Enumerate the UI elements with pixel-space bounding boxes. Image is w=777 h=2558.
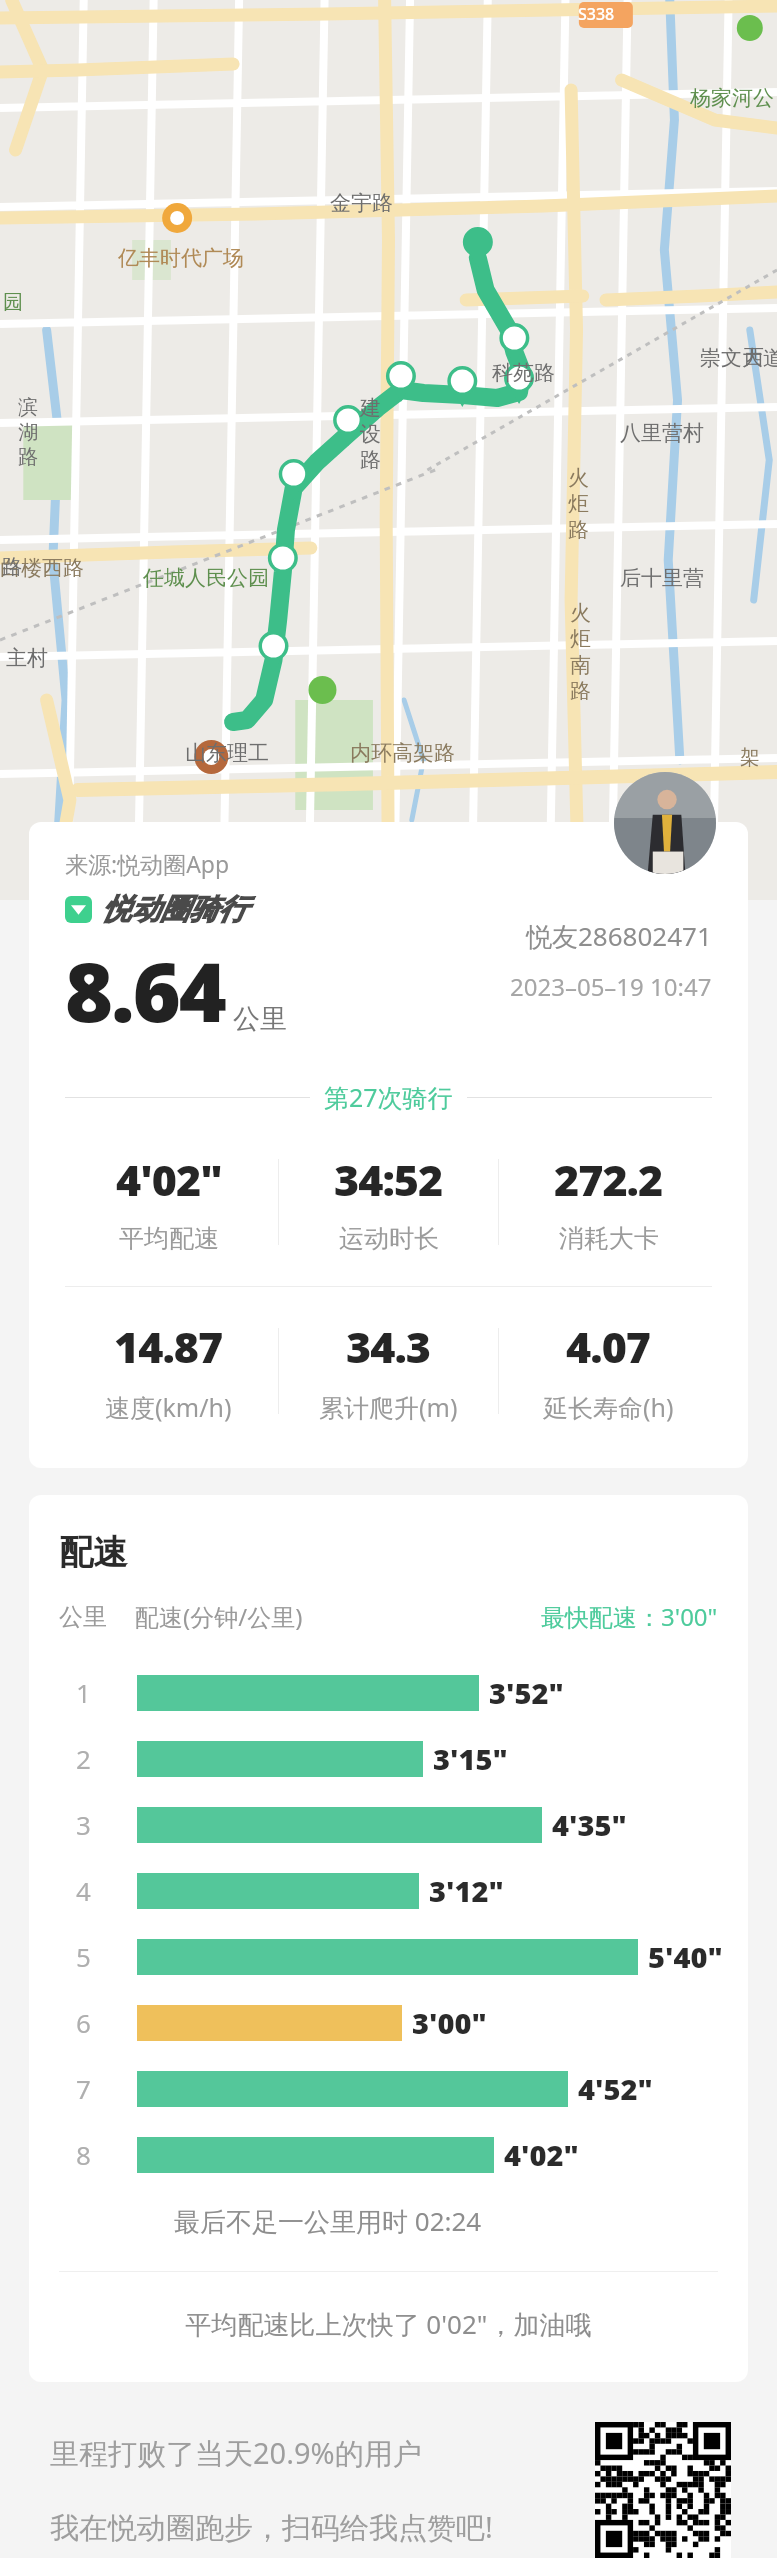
staticText: 累计爬升(m) bbox=[319, 1390, 458, 1424]
staticText: 4 bbox=[76, 1873, 91, 1908]
staticText: 我在悦动圈跑步，扫码给我点赞吧! bbox=[50, 2507, 493, 2547]
staticText: 延长寿命(h) bbox=[543, 1390, 674, 1424]
staticText: 滨 bbox=[18, 395, 38, 420]
staticText: 路 bbox=[360, 447, 381, 473]
staticText: 设 bbox=[360, 421, 381, 447]
staticText: 金宇路 bbox=[330, 190, 393, 216]
staticText: 34.3 bbox=[346, 1317, 431, 1376]
staticText: 悦动圈骑行 bbox=[102, 891, 247, 928]
staticText: 272.2 bbox=[554, 1150, 663, 1209]
staticText: 34:52 bbox=[334, 1150, 443, 1209]
staticText: 4.07 bbox=[566, 1317, 651, 1376]
staticText: S338 bbox=[578, 3, 615, 25]
staticText: 4'02" bbox=[116, 1150, 222, 1209]
button[interactable]: 来源:悦动圈App bbox=[29, 822, 748, 1468]
staticText: 4'52" bbox=[578, 2069, 653, 2108]
staticText: 3'00" bbox=[412, 2003, 487, 2042]
staticText: 建 bbox=[360, 395, 381, 421]
staticText: 2 bbox=[76, 1741, 91, 1776]
button[interactable]: 里程打败了当天20.9%的用户 bbox=[50, 2422, 731, 2558]
staticText: 速度(km/h) bbox=[105, 1390, 232, 1424]
staticText: 架 bbox=[740, 745, 760, 770]
staticText: 主村 bbox=[6, 645, 48, 671]
staticText: 8.64 bbox=[65, 934, 225, 1046]
staticText: 里程打败了当天20.9%的用户 bbox=[50, 2433, 422, 2473]
staticText: 3 bbox=[76, 1807, 91, 1842]
staticText: 路 bbox=[568, 517, 589, 543]
button[interactable]: User avatar bbox=[614, 772, 716, 874]
staticText: 杨家河公 bbox=[690, 85, 774, 111]
staticText: 路 bbox=[570, 678, 591, 704]
staticText: 南 bbox=[570, 652, 591, 678]
staticText: 1 bbox=[76, 1675, 91, 1710]
staticText: 消耗大卡 bbox=[559, 1223, 659, 1254]
staticText: 路 bbox=[2, 555, 22, 580]
staticText: 任城人民公园 bbox=[143, 565, 269, 591]
staticText: 平均配速比上次快了 0'02"，加油哦 bbox=[29, 2306, 748, 2342]
staticText: 内环高架路 bbox=[350, 740, 455, 766]
staticText: 悦友286802471 bbox=[526, 918, 712, 954]
staticText: 5'40" bbox=[648, 1937, 723, 1976]
staticText: 炬 bbox=[570, 626, 591, 652]
staticText: 第27次骑行 bbox=[324, 1080, 453, 1114]
staticText: 运动时长 bbox=[339, 1223, 439, 1254]
staticText: 火 bbox=[568, 465, 589, 491]
staticText: 平均配速 bbox=[119, 1223, 219, 1254]
staticText: 6 bbox=[76, 2005, 91, 2040]
staticText: 配速(分钟/公里) bbox=[135, 1600, 303, 1633]
staticText: 3'12" bbox=[429, 1871, 504, 1910]
staticText: 公里 bbox=[233, 1002, 287, 1036]
staticText: 亿丰时代广场 bbox=[118, 245, 244, 271]
staticText: 最快配速：3'00" bbox=[541, 1600, 718, 1633]
staticText: 崇文大道 bbox=[700, 345, 777, 371]
staticText: 3'52" bbox=[489, 1673, 564, 1712]
staticText: 5 bbox=[76, 1939, 91, 1974]
staticText: 配速 bbox=[59, 1531, 127, 1574]
staticText: 来源:悦动圈App bbox=[65, 848, 230, 879]
staticText: 最后不足一公里用时 02:24 bbox=[174, 2203, 482, 2239]
staticText: 14.87 bbox=[114, 1317, 223, 1376]
staticText: 八里营村 bbox=[620, 420, 704, 446]
staticText: 火 bbox=[570, 600, 591, 626]
staticText: 炬 bbox=[568, 491, 589, 517]
staticText: 科苑路 bbox=[492, 360, 555, 386]
staticText: 西 bbox=[744, 345, 764, 370]
staticText: 4'02" bbox=[504, 2135, 579, 2174]
staticText: 山东理工 bbox=[185, 740, 269, 766]
staticText: 后十里营 bbox=[620, 565, 704, 591]
staticText: 公里 bbox=[59, 1602, 107, 1632]
staticText: 白楼西路 bbox=[0, 555, 84, 581]
staticText: 园 bbox=[3, 290, 23, 315]
staticText: 2023–05–19 10:47 bbox=[510, 970, 712, 1003]
staticText: 4'35" bbox=[552, 1805, 627, 1844]
other: QR code bbox=[595, 2422, 731, 2558]
staticText: 3'15" bbox=[433, 1739, 508, 1778]
button[interactable]: 配速 bbox=[29, 1495, 748, 2382]
staticText: 7 bbox=[76, 2071, 91, 2106]
staticText: 路 bbox=[18, 445, 38, 470]
staticText: 湖 bbox=[18, 420, 38, 445]
staticText: 8 bbox=[76, 2137, 91, 2172]
